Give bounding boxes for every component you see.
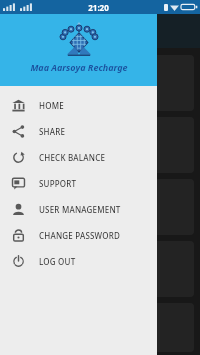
staticText: Maa Aarsoya Recharge	[30, 61, 128, 73]
other: Check balance	[12, 151, 25, 164]
button[interactable]: Log out	[0, 248, 157, 274]
other: Share	[12, 125, 25, 138]
other: Log out	[12, 255, 25, 268]
button[interactable]: Check balance	[0, 144, 157, 170]
staticText: SUPPORT	[39, 178, 77, 189]
other: User management	[12, 203, 25, 216]
other: Home	[12, 99, 25, 112]
staticText: SHARE	[39, 126, 66, 137]
other: Change password	[12, 229, 25, 242]
staticText: USER MANAGEMENT	[39, 204, 121, 215]
button[interactable]: User management	[0, 196, 157, 222]
other: Support	[12, 177, 25, 190]
staticText: HOME	[39, 100, 64, 111]
button[interactable]: Change password	[0, 222, 157, 248]
button[interactable]: Share	[0, 118, 157, 144]
button[interactable]: Home	[0, 92, 157, 118]
staticText: CHANGE PASSWORD	[39, 230, 121, 241]
staticText: CHECK BALANCE	[39, 152, 106, 163]
staticText: LOG OUT	[39, 256, 76, 267]
button[interactable]: Support	[0, 170, 157, 196]
staticText: 21:20	[88, 2, 109, 13]
